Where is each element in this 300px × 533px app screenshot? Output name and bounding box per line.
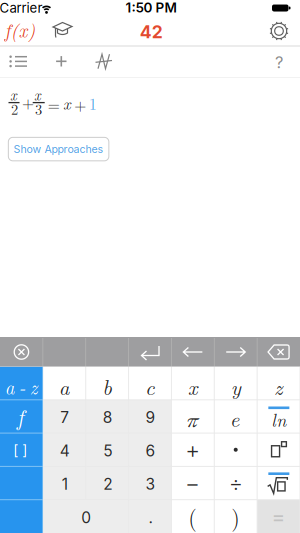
staticText: 9	[145, 408, 155, 427]
button[interactable]: brackets	[0, 434, 42, 466]
staticText: c	[145, 371, 155, 401]
button[interactable]: 6	[129, 434, 171, 466]
button[interactable]: New equation	[54, 54, 68, 68]
staticText: 7	[60, 408, 69, 427]
button[interactable]: a	[43, 367, 85, 399]
staticText: z	[274, 371, 283, 401]
staticText: 1	[62, 475, 68, 493]
button[interactable]: Dismiss keyboard	[11, 342, 31, 362]
button[interactable]: ln	[258, 400, 299, 433]
button[interactable]: Tutorials	[49, 19, 75, 43]
button[interactable]: 9	[129, 400, 171, 433]
button[interactable]: Settings	[267, 19, 291, 43]
button[interactable]: Show Approaches	[8, 137, 109, 161]
button[interactable]: divide	[215, 467, 257, 499]
staticText: f(x)	[4, 16, 35, 43]
staticText: a - z	[5, 373, 38, 400]
staticText: 42	[140, 21, 163, 42]
staticText: ÷	[229, 470, 243, 496]
staticText: 6	[145, 441, 155, 460]
staticText: +	[74, 93, 86, 115]
staticText: x	[10, 84, 17, 105]
staticText: y	[231, 371, 241, 401]
button[interactable]: plus	[172, 434, 214, 466]
button[interactable]: 2	[86, 467, 128, 499]
staticText: b	[102, 371, 112, 401]
button[interactable]: Move cursor left	[182, 346, 204, 358]
button[interactable]: equals	[258, 500, 299, 533]
button[interactable]: square root	[258, 467, 299, 499]
button[interactable]: Help	[275, 52, 283, 72]
staticText: 0	[81, 508, 91, 527]
button[interactable]: 8	[86, 400, 128, 433]
button[interactable]: z	[258, 367, 299, 399]
staticText: f	[17, 400, 24, 431]
staticText: .	[148, 508, 152, 527]
button[interactable]: 3	[129, 467, 171, 499]
staticText: +	[22, 91, 34, 113]
staticText: 5	[103, 441, 112, 460]
button[interactable]: 1	[43, 467, 85, 499]
button[interactable]: History	[8, 54, 30, 70]
button[interactable]: 0	[43, 500, 128, 533]
staticText: a	[59, 371, 70, 401]
staticText: =	[48, 93, 60, 115]
staticText: x	[63, 91, 71, 114]
button[interactable]: Return	[139, 344, 161, 360]
button[interactable]: c	[129, 367, 171, 399]
button[interactable]: .	[129, 500, 171, 533]
button[interactable]: Clear variables	[94, 53, 114, 71]
button[interactable]: close parenthesis	[215, 500, 257, 533]
staticText: e	[230, 403, 240, 433]
button[interactable]: times	[215, 434, 257, 466]
staticText: ln	[271, 407, 286, 432]
staticText: x	[34, 84, 41, 105]
staticText: x	[188, 371, 198, 401]
staticText: 2	[11, 98, 18, 119]
button[interactable]: y	[215, 367, 257, 399]
button[interactable]: power	[258, 434, 299, 466]
staticText: 8	[103, 408, 113, 427]
button[interactable]: e	[215, 400, 257, 433]
staticText: 3	[35, 98, 42, 119]
staticText: −	[185, 469, 200, 497]
staticText: Show Approaches	[14, 143, 104, 155]
staticText: 4	[60, 441, 70, 460]
button[interactable]: 5	[86, 434, 128, 466]
button[interactable]: Move cursor right	[225, 346, 247, 358]
button[interactable]: letters	[0, 367, 42, 399]
staticText: π	[187, 405, 199, 434]
button[interactable]: pi	[172, 400, 214, 433]
staticText: ?	[275, 52, 283, 72]
staticText: 1	[89, 92, 97, 114]
staticText: Carrier	[0, 0, 42, 16]
staticText: )	[231, 501, 240, 532]
staticText: 1:50 PM	[125, 0, 176, 16]
staticText: =	[272, 504, 286, 529]
staticText: +	[185, 436, 200, 464]
button[interactable]: open parenthesis	[172, 500, 214, 533]
staticText: (	[188, 501, 197, 532]
button[interactable]: Delete	[267, 344, 290, 360]
button[interactable]: x	[172, 367, 214, 399]
button[interactable]: 7	[43, 400, 85, 433]
button[interactable]: functions	[0, 400, 42, 433]
staticText: [ ]	[13, 442, 27, 459]
button[interactable]: 4	[43, 434, 85, 466]
button[interactable]: minus	[172, 467, 214, 499]
button[interactable]: b	[86, 367, 128, 399]
staticText: 3	[145, 475, 155, 493]
staticText: 2	[103, 475, 112, 493]
